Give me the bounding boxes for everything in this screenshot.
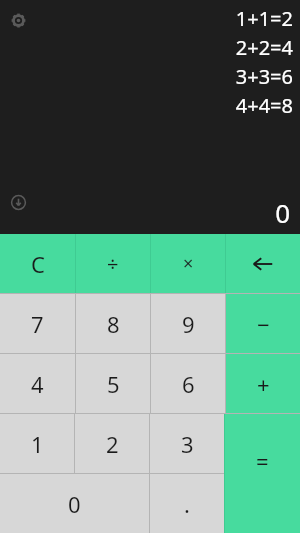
staticText: 7 — [31, 309, 44, 339]
button[interactable]: 2 — [75, 414, 149, 473]
staticText: + — [257, 369, 270, 399]
button[interactable]: Settings — [6, 8, 30, 32]
staticText: 1 — [31, 429, 44, 459]
staticText: 9 — [182, 309, 195, 339]
staticText: C — [31, 249, 45, 279]
staticText: = — [256, 446, 269, 476]
staticText: 4+4=8 — [235, 92, 293, 119]
staticText: 3+3=6 — [235, 63, 293, 90]
button[interactable]: C — [0, 234, 75, 293]
button[interactable]: = — [225, 414, 300, 533]
button[interactable]: Backspace — [226, 234, 300, 293]
button[interactable]: 8 — [76, 294, 150, 353]
staticText: 4 — [31, 369, 44, 399]
staticText: − — [257, 309, 270, 339]
staticText: 5 — [107, 369, 120, 399]
button[interactable]: × — [151, 234, 225, 293]
staticText: 8 — [107, 309, 120, 339]
button[interactable]: 5 — [76, 354, 150, 413]
staticText: 1+1=2 — [235, 5, 293, 32]
staticText: 3 — [181, 429, 194, 459]
button[interactable]: − — [226, 294, 300, 353]
staticText: 2 — [106, 429, 119, 459]
button[interactable]: 1 — [0, 414, 74, 473]
button[interactable]: 9 — [151, 294, 225, 353]
button[interactable]: . — [150, 474, 224, 533]
button[interactable]: 4 — [0, 354, 75, 413]
staticText: × — [183, 251, 194, 276]
staticText: ÷ — [107, 250, 119, 277]
button[interactable]: + — [226, 354, 300, 413]
button[interactable]: ÷ — [76, 234, 150, 293]
button[interactable]: 7 — [0, 294, 75, 353]
button[interactable]: 0 — [0, 474, 149, 533]
staticText: 2+2=4 — [235, 34, 293, 61]
staticText: . — [184, 489, 190, 519]
button[interactable]: 6 — [151, 354, 225, 413]
staticText: 0 — [68, 489, 81, 519]
button[interactable]: 3 — [150, 414, 224, 473]
staticText: 0 — [275, 195, 290, 230]
staticText: 6 — [182, 369, 195, 399]
button[interactable]: History — [6, 190, 30, 214]
